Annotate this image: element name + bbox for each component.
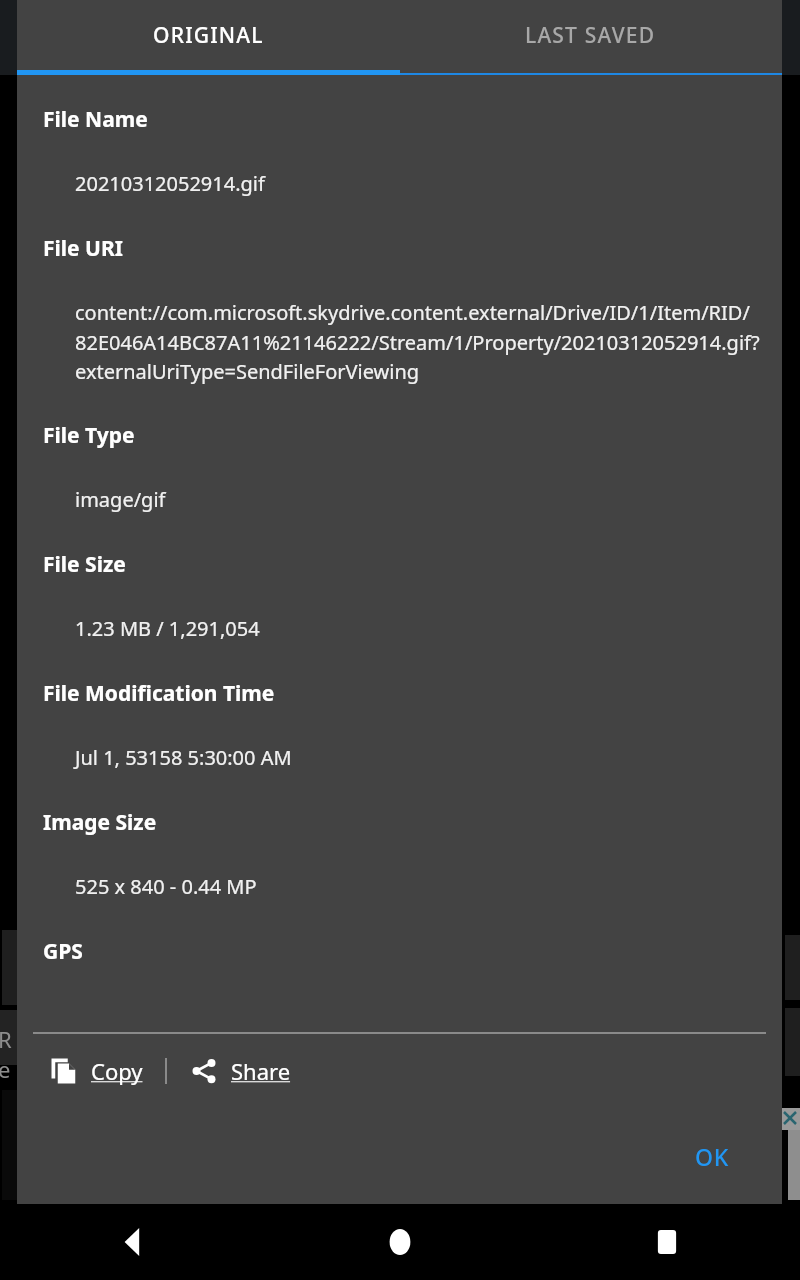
button[interactable]: Share	[185, 1034, 295, 1108]
staticText: File Size	[43, 550, 126, 579]
staticText: ORIGINAL	[153, 21, 264, 50]
staticText: Copy	[91, 1056, 143, 1086]
staticText: 525 x 840 - 0.44 MP	[75, 873, 257, 900]
staticText: content://com.microsoft.skydrive.content…	[75, 299, 770, 385]
staticText: Jul 1, 53158 5:30:00 AM	[75, 744, 292, 771]
staticText: image/gif	[75, 486, 166, 513]
staticText: 20210312052914.gif	[75, 170, 265, 197]
staticText: Re	[0, 1024, 15, 1079]
staticText: OK	[695, 1141, 730, 1172]
staticText: File Modification Time	[43, 679, 275, 708]
staticText: File Type	[43, 421, 135, 450]
staticText: LAST SAVED	[525, 21, 656, 50]
button[interactable]: Home	[266, 1204, 533, 1280]
staticText: 1.23 MB / 1,291,054	[75, 615, 260, 642]
button[interactable]: OK	[679, 1129, 746, 1184]
staticText: Share	[231, 1056, 291, 1086]
button[interactable]: ORIGINAL	[17, 0, 399, 70]
staticText: Image Size	[43, 808, 157, 837]
staticText: File URI	[43, 234, 123, 263]
button[interactable]: Close ad	[782, 1110, 798, 1126]
button[interactable]: Recent apps	[533, 1204, 800, 1280]
button[interactable]: Back	[0, 1204, 266, 1280]
button[interactable]: Copy	[45, 1034, 147, 1108]
button[interactable]: LAST SAVED	[399, 0, 782, 70]
staticText: File Name	[43, 105, 148, 134]
staticText: GPS	[43, 937, 83, 966]
